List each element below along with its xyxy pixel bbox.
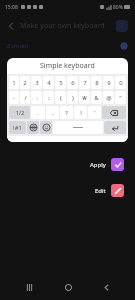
button[interactable]: 7 [79,76,90,89]
staticText: 2 [23,79,27,87]
staticText: ? [120,21,124,31]
button[interactable]: Apply [86,154,128,175]
button[interactable]: 4 [43,76,54,89]
button[interactable]: 9 [103,76,114,89]
button[interactable]: ' [88,106,101,119]
staticText: ; [48,94,50,102]
button[interactable]: ! [74,106,87,119]
staticText: 8 [95,79,99,87]
button[interactable]: Key [27,121,39,134]
staticText: Edit [95,187,106,195]
staticText: / [24,94,27,102]
staticText: ! [80,109,82,117]
staticText: Zamobi [7,42,29,50]
button[interactable]: & [91,91,102,104]
button[interactable]: Key [40,121,52,134]
button[interactable]: " [115,91,126,104]
button[interactable]: 8 [91,76,102,89]
button[interactable]: 0 [115,76,126,89]
button[interactable]: . [31,106,45,119]
staticText: 4 [47,79,51,87]
staticText: Simple keyboard [40,61,95,71]
staticText: 15:08 [5,4,18,11]
button[interactable]: @ [103,91,114,104]
button[interactable]: Edit [91,180,128,201]
button[interactable]: Help [116,20,128,32]
button[interactable]: ; [43,91,54,104]
staticText: Make your own keyboard [20,21,105,31]
button[interactable]: , [46,106,59,119]
button[interactable]: 1 [9,76,19,89]
button[interactable]: ( [55,91,66,104]
button[interactable]: Key [53,121,103,134]
staticText: 6 [71,79,75,87]
button[interactable]: : [31,91,42,104]
staticText: & [94,94,99,102]
button[interactable]: !#1 [9,121,26,134]
button[interactable]: ₩ [79,91,90,104]
button[interactable]: Key [102,106,126,119]
staticText: 3 [35,79,39,87]
staticText: 9 [107,79,111,87]
button[interactable]: 1/2 [9,106,30,119]
staticText: . [37,109,39,117]
staticText: ' [94,109,96,117]
staticText: , [52,109,54,117]
button[interactable]: / [20,91,30,104]
button[interactable]: Key [104,121,126,134]
button[interactable]: ) [67,91,78,104]
button[interactable]: 5 [55,76,66,89]
staticText: " [119,94,122,102]
button[interactable]: 6 [67,76,78,89]
staticText: ? [65,109,68,117]
staticText: 1 [12,79,16,87]
button[interactable]: Home [58,277,78,297]
staticText: Apply [90,161,106,169]
button[interactable]: ? [60,106,73,119]
button[interactable]: - [9,91,19,104]
button[interactable]: Back [96,277,116,297]
staticText: 80% [113,4,123,11]
staticText: ) [72,94,74,102]
button[interactable]: Recents [19,277,39,297]
staticText: - [13,94,15,102]
staticText: ₩ [82,94,87,102]
staticText: 7 [83,79,87,87]
staticText: 0 [119,79,123,87]
staticText: 1/2 [15,109,25,117]
staticText: @ [106,94,112,102]
button[interactable]: 3 [31,76,42,89]
button[interactable]: 2 [20,76,30,89]
button[interactable]: Back [7,22,15,30]
staticText: 5 [59,79,63,87]
staticText: ( [60,94,62,102]
staticText: !#1 [13,124,22,132]
staticText: : [36,94,38,102]
